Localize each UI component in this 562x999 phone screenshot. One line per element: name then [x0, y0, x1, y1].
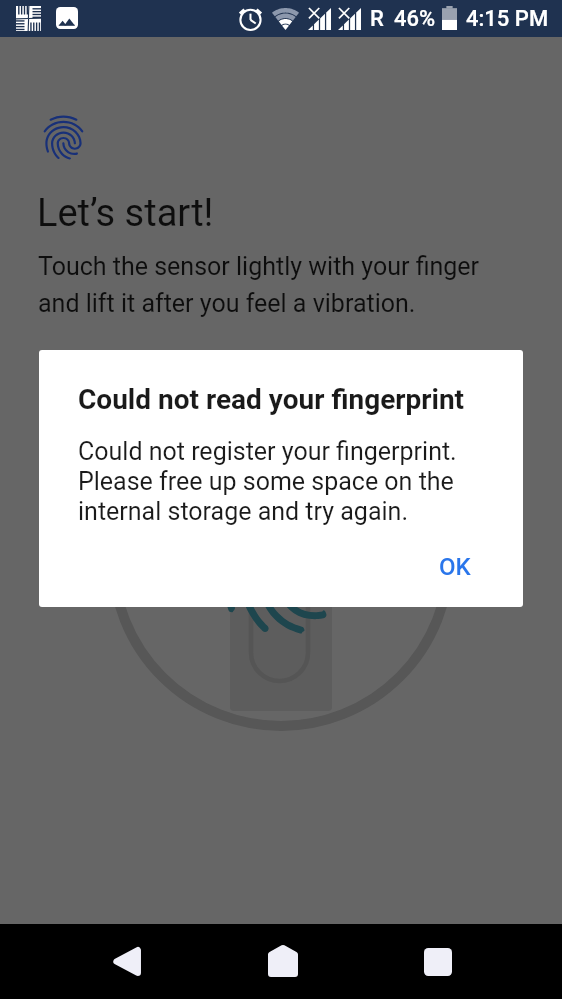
staticText: 46% — [394, 6, 436, 32]
staticText: OK — [439, 553, 471, 581]
button[interactable]: Back — [90, 924, 160, 999]
staticText: Touch the sensor lightly with your finge… — [38, 252, 506, 318]
staticText: 4:15 PM — [466, 6, 549, 32]
button[interactable]: OK — [429, 545, 481, 589]
button[interactable]: Recent apps — [403, 924, 473, 999]
staticText: Could not register your fingerprint. Ple… — [78, 437, 493, 526]
staticText: Could not read your fingerprint — [78, 383, 465, 416]
button[interactable]: Home — [247, 924, 317, 999]
staticText: R — [370, 6, 384, 32]
staticText: Let’s start! — [37, 191, 214, 236]
